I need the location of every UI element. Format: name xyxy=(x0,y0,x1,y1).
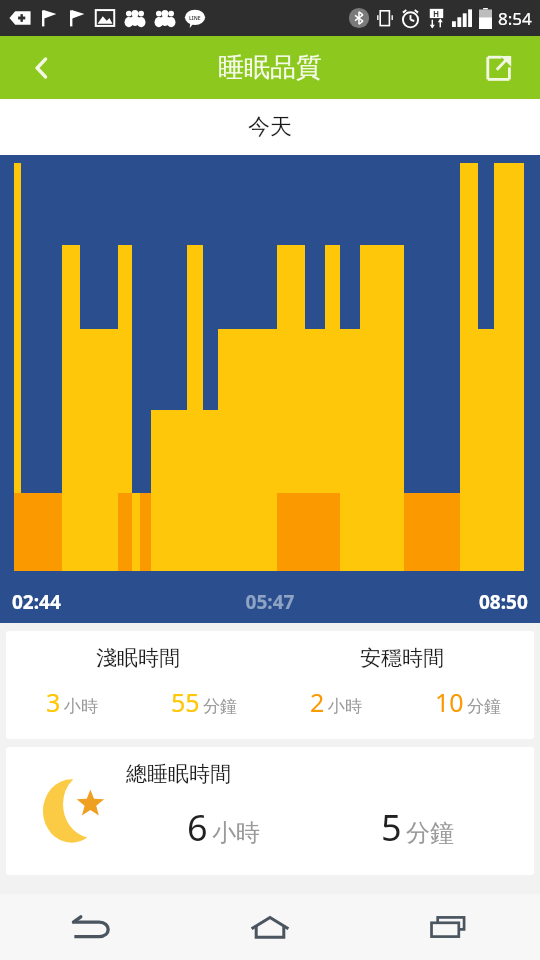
staticText: 55 xyxy=(171,685,200,719)
staticText: 2 xyxy=(310,685,325,719)
button[interactable]: Home xyxy=(180,894,360,960)
staticText: 10 xyxy=(435,685,464,719)
staticText: LINE xyxy=(189,15,201,22)
staticText: 睡眠品質 xyxy=(218,51,322,84)
staticText: 3 xyxy=(46,685,61,719)
button[interactable]: Recent apps xyxy=(360,894,540,960)
staticText: 08:50 xyxy=(479,589,528,615)
staticText: 淺眠時間 xyxy=(96,645,180,671)
staticText: 小時 xyxy=(212,818,260,848)
staticText: 分鐘 xyxy=(406,818,454,848)
staticText: 今天 xyxy=(248,113,292,141)
staticText: 總睡眠時間 xyxy=(126,761,231,787)
button[interactable]: Back xyxy=(0,894,180,960)
staticText: H xyxy=(433,8,440,19)
staticText: 8:54 xyxy=(498,7,532,30)
button[interactable]: 淺眠時間 xyxy=(6,631,534,739)
staticText: 05:47 xyxy=(61,589,479,615)
button[interactable]: 總睡眠時間 xyxy=(6,747,534,875)
staticText: 6 xyxy=(187,803,208,852)
staticText: 小時 xyxy=(328,696,362,717)
staticText: 5 xyxy=(381,803,402,852)
staticText: 分鐘 xyxy=(467,696,501,717)
button[interactable]: Share xyxy=(456,36,540,99)
staticText: 小時 xyxy=(64,696,98,717)
staticText: 安穩時間 xyxy=(360,645,444,671)
button[interactable]: Back xyxy=(0,36,84,99)
staticText: 02:44 xyxy=(12,589,61,615)
staticText: 分鐘 xyxy=(203,696,237,717)
